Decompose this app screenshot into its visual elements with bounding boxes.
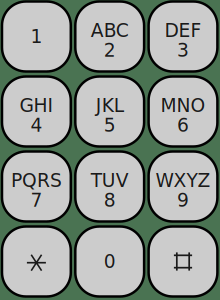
- staticText: ABC: [91, 20, 129, 41]
- button[interactable]: MNO: [149, 76, 217, 146]
- staticText: 0: [104, 251, 116, 272]
- button[interactable]: WXYZ: [149, 151, 217, 221]
- staticText: 6: [177, 114, 189, 136]
- button[interactable]: GHI: [2, 76, 71, 146]
- staticText: 5: [104, 114, 116, 136]
- button[interactable]: PQRS: [2, 151, 71, 221]
- staticText: 1: [30, 26, 42, 47]
- staticText: PQRS: [11, 170, 62, 191]
- staticText: 7: [30, 189, 42, 211]
- staticText: 4: [30, 114, 42, 136]
- button[interactable]: DEF: [149, 1, 217, 71]
- staticText: JKL: [96, 95, 124, 116]
- staticText: 8: [104, 189, 116, 211]
- staticText: 3: [177, 39, 189, 61]
- button[interactable]: Star: [2, 226, 71, 296]
- button[interactable]: JKL: [75, 76, 144, 146]
- staticText: GHI: [19, 95, 53, 116]
- button[interactable]: 1: [2, 1, 71, 71]
- button[interactable]: Pound: [149, 226, 217, 296]
- staticText: 2: [104, 39, 116, 61]
- button[interactable]: ABC: [75, 1, 144, 71]
- staticText: TUV: [91, 170, 129, 191]
- staticText: DEF: [164, 20, 201, 41]
- staticText: 9: [177, 189, 189, 211]
- button[interactable]: TUV: [75, 151, 144, 221]
- staticText: MNO: [160, 95, 205, 116]
- staticText: WXYZ: [155, 170, 210, 191]
- button[interactable]: 0: [75, 226, 144, 296]
